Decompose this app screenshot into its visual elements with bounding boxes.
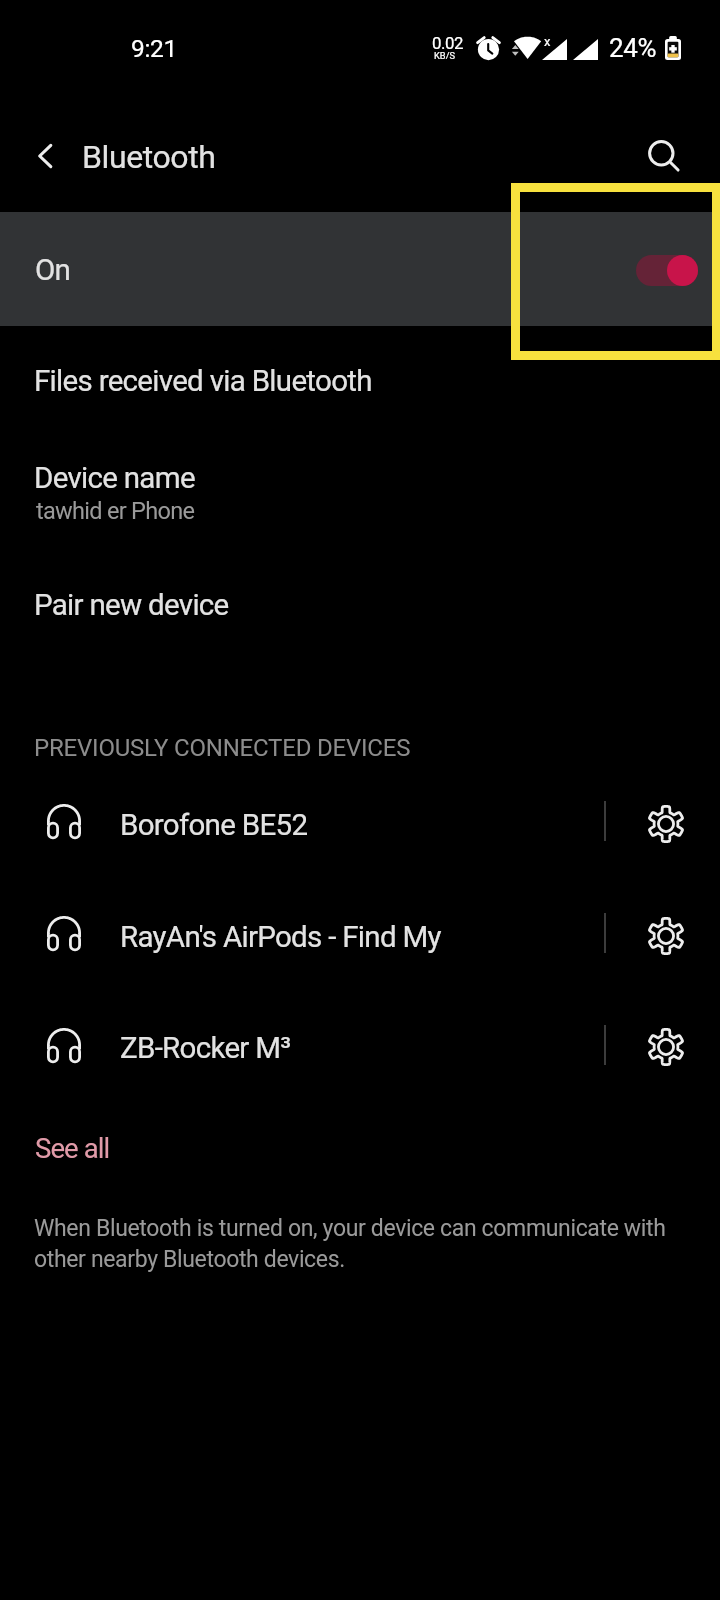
button[interactable]: Back	[22, 128, 76, 182]
staticText: ZB-Rocker M³	[120, 1031, 291, 1066]
button[interactable]	[0, 990, 720, 1100]
staticText: Device name	[34, 461, 195, 496]
staticText: See all	[35, 1132, 110, 1164]
button[interactable]	[0, 440, 720, 540]
button[interactable]	[0, 766, 720, 876]
staticText: 24%	[609, 33, 657, 63]
button[interactable]	[0, 878, 720, 988]
button[interactable]: Search	[634, 126, 688, 180]
button[interactable]: Device settings	[638, 908, 694, 964]
staticText: Files received via Bluetooth	[34, 364, 372, 399]
button[interactable]: Bluetooth toggle	[636, 255, 698, 286]
button[interactable]: Device settings	[638, 796, 694, 852]
button[interactable]	[0, 340, 720, 430]
staticText: Pair new device	[34, 588, 229, 623]
staticText: When Bluetooth is turned on, your device…	[34, 1215, 682, 1272]
staticText: PREVIOUSLY CONNECTED DEVICES	[34, 734, 411, 762]
staticText: KB/S	[434, 50, 455, 61]
staticText: RayAn's AirPods - Find My	[120, 920, 441, 955]
staticText: Borofone BE52	[120, 808, 308, 843]
button[interactable]	[0, 212, 720, 326]
staticText: tawhid er Phone	[36, 497, 195, 525]
staticText: 0.02	[432, 33, 464, 53]
staticText: x	[544, 34, 551, 49]
button[interactable]	[0, 565, 720, 655]
button[interactable]: See all	[35, 1132, 110, 1164]
staticText: On	[35, 253, 71, 288]
button[interactable]: Device settings	[638, 1019, 694, 1075]
staticText: 9:21	[131, 34, 178, 63]
staticText: Bluetooth	[82, 138, 216, 176]
